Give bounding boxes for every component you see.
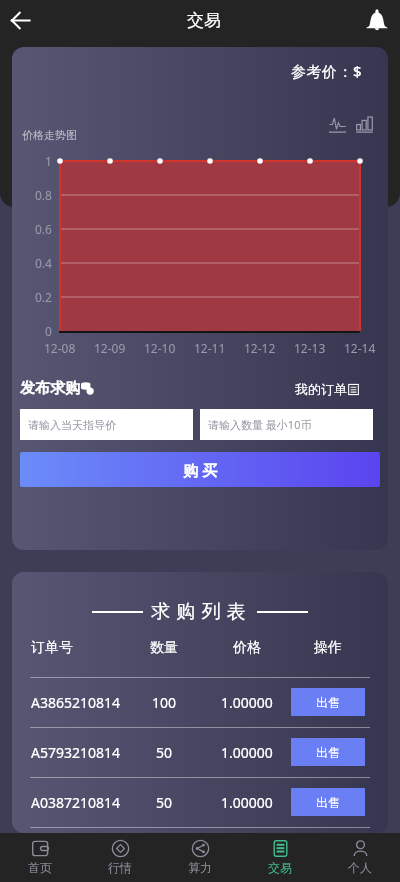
button[interactable]: A0387210814 — [12, 778, 388, 827]
button[interactable]: 首页 — [0, 833, 80, 882]
button[interactable]: 发布求购 — [20, 379, 94, 398]
staticText: 算力 — [188, 860, 212, 875]
staticText: 12-10 — [144, 340, 176, 356]
staticText: 1 — [45, 153, 52, 169]
staticText: 价格 — [233, 639, 261, 655]
staticText: 价格走势图 — [22, 128, 77, 142]
staticText: 1.00000 — [221, 743, 273, 762]
staticText: 请输入当天指导价 — [28, 418, 116, 432]
staticText: 求购列表 — [151, 600, 252, 624]
staticText: 50 — [156, 793, 173, 812]
staticText: A0387210814 — [31, 793, 121, 812]
staticText: 交易 — [268, 860, 292, 875]
button[interactable]: Back — [4, 4, 36, 36]
staticText: 我的订单 — [295, 381, 347, 397]
staticText: 参考价：$ — [291, 61, 363, 81]
staticText: 出售 — [316, 795, 340, 810]
staticText: 操作 — [314, 639, 342, 655]
button[interactable]: Line chart — [324, 111, 350, 137]
staticText: A3865210814 — [31, 693, 121, 712]
staticText: 100 — [152, 693, 177, 712]
staticText: 订单号 — [31, 639, 73, 655]
staticText: 12-13 — [294, 340, 326, 356]
staticText: 50 — [156, 743, 173, 762]
staticText: 0 — [45, 323, 52, 339]
staticText: 出售 — [316, 745, 340, 760]
staticText: 1.00000 — [221, 693, 273, 712]
staticText: 0.2 — [35, 289, 52, 305]
button[interactable]: A3865210814 — [12, 678, 388, 727]
button[interactable]: 购 买 — [20, 452, 380, 487]
staticText: 12-14 — [344, 340, 376, 356]
button[interactable]: 我的订单 — [295, 381, 359, 397]
staticText: 发布求购 — [20, 379, 80, 398]
staticText: 出售 — [316, 695, 340, 710]
staticText: 请输入数量 最小10币 — [208, 417, 312, 432]
staticText: 行情 — [108, 860, 132, 875]
button[interactable]: 出售 — [291, 738, 365, 766]
button[interactable]: 算力 — [160, 833, 240, 882]
button[interactable]: 出售 — [291, 788, 365, 816]
button[interactable]: 请输入数量 最小10币 — [200, 409, 373, 440]
staticText: 12-08 — [44, 340, 76, 356]
staticText: 1.00000 — [221, 793, 273, 812]
staticText: 12-09 — [94, 340, 126, 356]
button[interactable]: 请输入当天指导价 — [20, 409, 193, 440]
button[interactable]: Notifications — [362, 5, 392, 35]
button[interactable]: A5793210814 — [12, 728, 388, 777]
staticText: 12-11 — [194, 340, 226, 356]
staticText: 数量 — [150, 639, 178, 655]
staticText: 0.6 — [35, 221, 52, 237]
staticText: 个人 — [348, 860, 372, 875]
staticText: A5793210814 — [31, 743, 121, 762]
button[interactable]: 个人 — [320, 833, 400, 882]
staticText: 12-12 — [244, 340, 276, 356]
button[interactable]: 交易 — [240, 833, 320, 882]
button[interactable]: 出售 — [291, 688, 365, 716]
staticText: 首页 — [28, 860, 52, 875]
staticText: 交易 — [187, 10, 221, 31]
staticText: 购 买 — [183, 460, 217, 480]
staticText: 0.8 — [35, 187, 52, 203]
staticText: 0.4 — [35, 255, 52, 271]
button[interactable]: Bar chart — [351, 111, 377, 137]
button[interactable]: 行情 — [80, 833, 160, 882]
